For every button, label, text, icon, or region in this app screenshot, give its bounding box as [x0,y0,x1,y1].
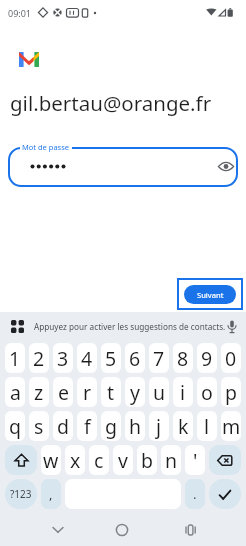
button[interactable]: q [5,411,25,441]
button[interactable]: v [113,445,133,475]
staticText: 3 [57,345,69,372]
button[interactable] [107,515,137,545]
button[interactable]: 1 [5,343,25,373]
button[interactable]: ?123 [5,479,37,509]
button[interactable]: w [41,445,61,475]
button[interactable]: n [161,445,181,475]
staticText: h [129,413,142,440]
staticText: a [10,379,21,406]
button[interactable]: d [53,411,73,441]
staticText: Suivant [197,290,224,300]
staticText: . [193,485,197,503]
staticText: gil.bertau@orange.fr [10,89,212,117]
button[interactable]: m [221,411,241,441]
button[interactable] [226,320,238,334]
button[interactable]: 9 [197,343,217,373]
button[interactable]: . [185,479,205,509]
button[interactable]: c [89,445,109,475]
button[interactable] [175,515,205,545]
staticText: b [141,447,153,474]
button[interactable]: f [77,411,97,441]
staticText: g [105,413,117,440]
button[interactable] [43,515,73,545]
button[interactable]: ' [185,445,205,475]
staticText: 4 [81,345,93,372]
button[interactable]: r [77,377,97,407]
button[interactable]: 2 [29,343,49,373]
staticText: Mot de passe [22,142,70,152]
staticText: w [43,447,59,474]
button[interactable]: i [173,377,193,407]
staticText: v [118,447,128,474]
staticText: i [180,379,186,406]
staticText: o [201,379,213,406]
button[interactable]: p [221,377,241,407]
button[interactable]: 8 [173,343,193,373]
button[interactable]: 5 [101,343,121,373]
button[interactable]: z [29,377,49,407]
staticText: z [34,379,44,406]
staticText: 2 [33,345,45,372]
staticText: 5 [105,345,117,372]
staticText: e [58,379,69,406]
staticText: 0 [225,345,237,372]
button[interactable]: g [101,411,121,441]
staticText: ' [193,447,198,474]
staticText: 09:01 [8,7,32,19]
button[interactable]: k [173,411,193,441]
staticText: s [34,413,44,440]
staticText: 8 [177,345,189,372]
staticText: 9 [201,345,213,372]
button[interactable]: l [197,411,217,441]
button[interactable]: t [101,377,121,407]
button[interactable]: 6 [125,343,145,373]
staticText: j [156,413,162,440]
button[interactable]: y [125,377,145,407]
staticText: 7 [153,345,165,372]
button[interactable] [209,445,241,475]
button[interactable] [5,445,37,475]
button[interactable]: 4 [77,343,97,373]
button[interactable]: 0 [221,343,241,373]
staticText: r [83,379,92,406]
button[interactable]: e [53,377,73,407]
button[interactable] [8,147,238,187]
button[interactable]: a [5,377,25,407]
staticText: y [130,379,140,406]
staticText: d [57,413,69,440]
staticText: , [49,485,53,503]
staticText: l [204,413,210,440]
staticText: k [178,413,189,440]
button[interactable]: j [149,411,169,441]
button[interactable]: o [197,377,217,407]
staticText: f [84,413,91,440]
button[interactable]: 7 [149,343,169,373]
staticText: 1 [9,345,21,372]
button[interactable] [11,320,24,333]
button[interactable] [209,479,241,509]
staticText: Appuyez pour activer les suggestions de … [34,321,226,332]
button[interactable]: h [125,411,145,441]
staticText: p [225,379,237,406]
button[interactable]: 3 [53,343,73,373]
button[interactable]: , [41,479,61,509]
button[interactable]: x [65,445,85,475]
staticText: ?123 [10,487,32,501]
button[interactable]: b [137,445,157,475]
staticText: n [165,447,178,474]
staticText: u [153,379,166,406]
staticText: t [107,379,115,406]
staticText: 6 [129,345,141,372]
button[interactable]: Suivant [184,285,236,304]
staticText: c [94,447,104,474]
staticText: q [9,413,21,440]
staticText: m [222,413,241,440]
button[interactable]: u [149,377,169,407]
staticText: x [70,447,81,474]
button[interactable]: s [29,411,49,441]
